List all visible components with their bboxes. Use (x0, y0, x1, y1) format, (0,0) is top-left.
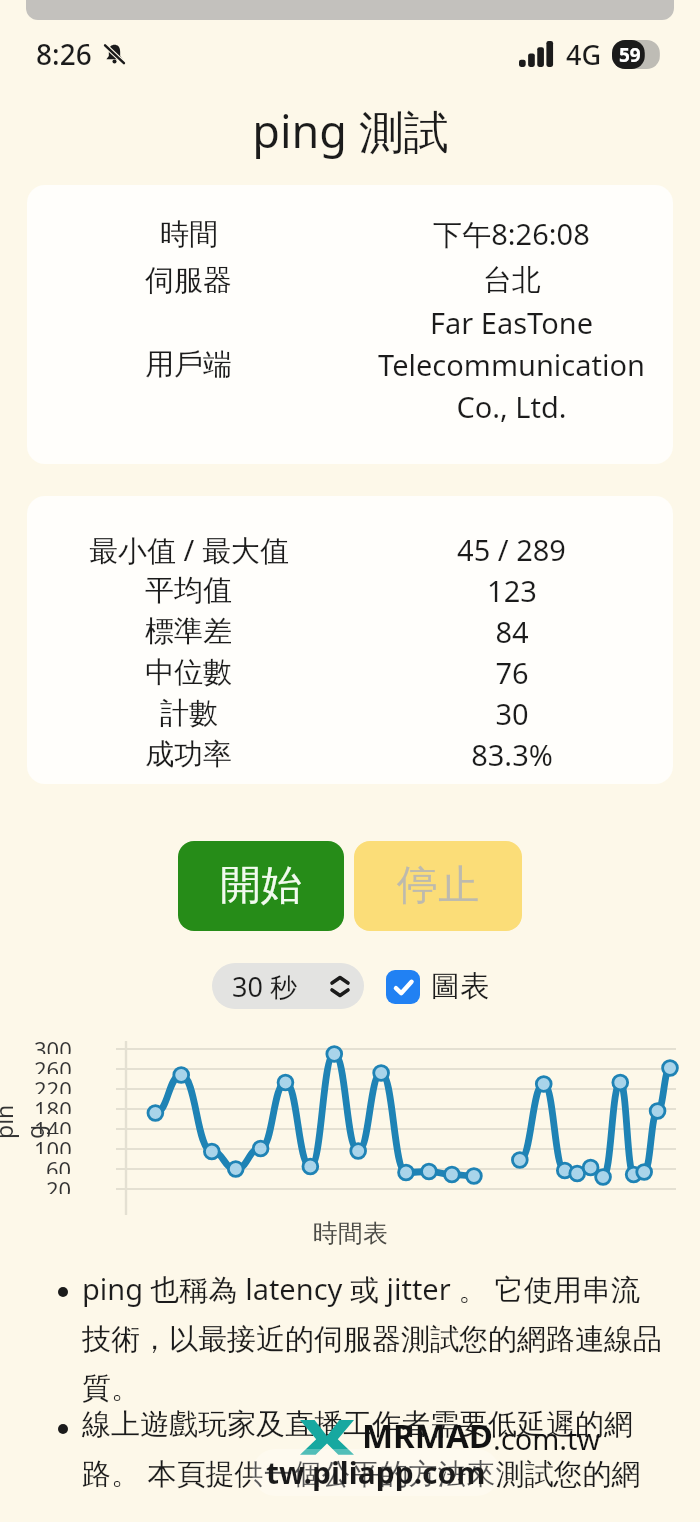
staticText: 76 (495, 653, 529, 692)
staticText: ping (0, 1101, 50, 1139)
button[interactable]: 開始 (178, 841, 344, 931)
staticText: 開始 (220, 860, 302, 912)
staticText: 線上遊戲玩家及直播工作者需要低延遲的網路。 本頁提供一個公平的方法來測試您的網 (82, 1406, 668, 1493)
staticText: 中位數 (145, 654, 232, 691)
staticText: 圖表 (431, 968, 489, 1005)
other: Silent mode (101, 41, 128, 68)
staticText: 成功率 (145, 736, 232, 773)
staticText: Far EasTone Telecommunication Co., Ltd. (352, 303, 671, 426)
staticText: 59 (619, 42, 641, 68)
staticText: 30 秒 (232, 968, 297, 1005)
staticText: 最小值 / 最大值 (89, 530, 289, 570)
staticText: 220 (34, 1074, 72, 1094)
staticText: .com.tw (493, 1419, 601, 1458)
staticText: 83.3% (471, 735, 553, 774)
staticText: MRMAD (362, 1413, 493, 1458)
staticText: 123 (487, 571, 537, 610)
staticText: 140 (34, 1114, 72, 1134)
staticText: 時間 (160, 216, 218, 253)
button[interactable]: 30 秒 (212, 963, 364, 1009)
staticText: 180 (34, 1094, 72, 1114)
staticText: 停止 (397, 860, 479, 912)
staticText: 8:26 (36, 35, 92, 73)
staticText: 30 (495, 694, 529, 733)
staticText: 伺服器 (145, 262, 232, 299)
button[interactable]: 圖表 (386, 968, 489, 1005)
staticText: 4G (566, 36, 602, 73)
staticText: 時間表 (313, 1218, 388, 1249)
staticText: 台北 (483, 262, 541, 299)
staticText: 100 (34, 1134, 72, 1154)
staticText: 60 (46, 1154, 72, 1174)
staticText: 下午8:26:08 (433, 214, 590, 254)
staticText: tw.piliapp.com (266, 1452, 486, 1493)
staticText: 260 (34, 1054, 72, 1074)
staticText: 平均值 (145, 572, 232, 609)
staticText: 20 (46, 1174, 72, 1194)
staticText: 用戶端 (145, 346, 232, 383)
staticText: ping 測試 (252, 100, 449, 161)
staticText: 計數 (160, 695, 218, 732)
staticText: 標準差 (145, 613, 232, 650)
staticText: 84 (495, 612, 529, 651)
staticText: 300 (34, 1034, 72, 1054)
staticText: 45 / 289 (457, 530, 566, 569)
button[interactable]: 停止 (354, 841, 522, 931)
staticText: ping 也稱為 latency 或 jitter 。 它使用串流技術，以最接近… (82, 1269, 668, 1406)
